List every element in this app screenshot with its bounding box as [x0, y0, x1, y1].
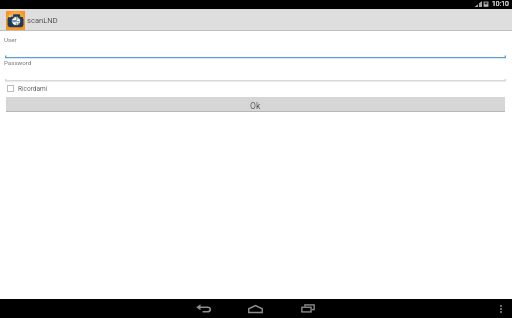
button[interactable]: Ricordami: [7, 83, 48, 94]
staticText: scanLND: [27, 16, 58, 25]
button[interactable]: scanLND: [0, 9, 512, 30]
button[interactable]: Ok: [6, 97, 505, 112]
staticText: Ricordami: [18, 85, 48, 93]
button[interactable]: Back: [190, 299, 217, 318]
button[interactable]: Home: [242, 299, 269, 318]
staticText: User: [4, 36, 17, 43]
staticText: Password: [4, 59, 32, 66]
button[interactable]: More options: [493, 299, 509, 318]
button[interactable]: User: [4, 33, 507, 58]
staticText: Ok: [250, 101, 261, 111]
button[interactable]: Password: [4, 58, 507, 82]
staticText: 10:10: [492, 0, 509, 8]
button[interactable]: Recent apps: [294, 299, 321, 318]
